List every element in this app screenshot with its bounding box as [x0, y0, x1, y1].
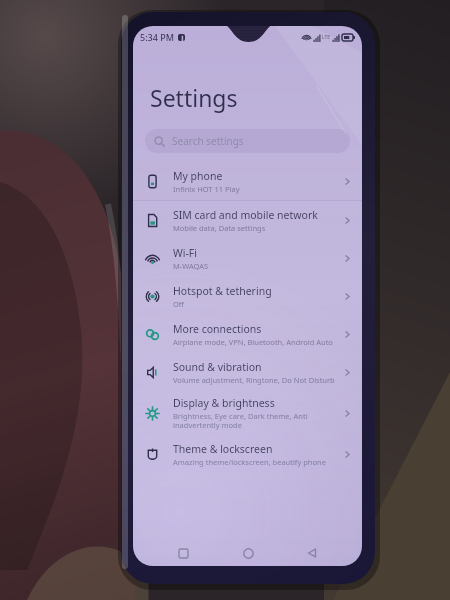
staticText: Display & brightness — [173, 396, 275, 410]
staticText: Brightness, Eye care, Dark theme, Anti i… — [173, 411, 308, 430]
button[interactable]: SIM card and mobile network — [133, 201, 362, 239]
staticText: M-WAQAS — [173, 261, 209, 271]
staticText: Sound & vibration — [173, 360, 262, 374]
staticText: Infinix HOT 11 Play — [173, 184, 240, 194]
staticText: Airplane mode, VPN, Bluetooth, Android A… — [173, 337, 333, 347]
staticText: More connections — [173, 322, 262, 336]
button[interactable]: Sound & vibration — [133, 353, 362, 391]
staticText: Search settings — [172, 134, 244, 148]
staticText: Off — [173, 299, 185, 309]
staticText: Volume adjustment, Ringtone, Do Not Dist… — [173, 375, 335, 385]
staticText: LTE — [322, 34, 331, 41]
button[interactable]: Hotspot & tethering — [133, 277, 362, 315]
button[interactable]: Theme & lockscreen — [133, 435, 362, 473]
staticText: Mobile data, Data settings — [173, 223, 266, 233]
staticText: My phone — [173, 169, 223, 183]
button[interactable]: Search settings — [145, 129, 350, 153]
button[interactable]: My phone — [133, 162, 362, 200]
staticText: Hotspot & tethering — [173, 284, 272, 298]
button[interactable]: Recents — [168, 540, 198, 566]
button[interactable]: Wi-Fi — [133, 239, 362, 277]
button[interactable]: Display & brightness — [133, 391, 362, 435]
button[interactable]: Home — [233, 540, 263, 566]
button[interactable]: Back — [297, 540, 327, 566]
button[interactable]: More connections — [133, 315, 362, 353]
staticText: SIM card and mobile network — [173, 208, 318, 222]
staticText: Amazing theme/lockscreen, beautify phone — [173, 457, 326, 467]
staticText: Theme & lockscreen — [173, 442, 273, 456]
staticText: 5:34 PM — [140, 31, 174, 43]
staticText: Settings — [150, 82, 238, 113]
staticText: Wi-Fi — [173, 246, 198, 260]
